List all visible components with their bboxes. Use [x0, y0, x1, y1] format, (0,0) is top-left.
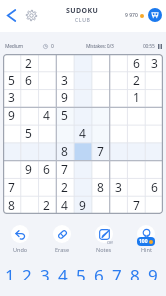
button[interactable]: 9 [55, 88, 73, 106]
button[interactable]: 3 [36, 264, 54, 280]
button[interactable]: 8 [126, 264, 144, 280]
button[interactable]: Undo [2, 225, 38, 253]
button[interactable] [109, 160, 127, 178]
button[interactable]: 9 [20, 160, 37, 178]
button[interactable]: 2 [37, 196, 55, 214]
button[interactable]: 6 [90, 264, 108, 280]
button[interactable]: 6 [145, 178, 163, 196]
button[interactable]: 6 [127, 54, 145, 71]
button[interactable] [145, 196, 163, 214]
button[interactable]: 9 970 [124, 10, 145, 21]
button[interactable]: 7 [108, 264, 126, 280]
button[interactable] [55, 54, 73, 71]
button[interactable] [109, 106, 127, 124]
button[interactable]: 6 [20, 71, 37, 88]
button[interactable] [3, 160, 20, 178]
button[interactable]: 8 [55, 142, 73, 160]
button[interactable] [73, 54, 91, 71]
button[interactable] [109, 88, 127, 106]
button[interactable]: 3 [55, 71, 73, 88]
button[interactable]: 6 [37, 160, 55, 178]
button[interactable]: 9 [144, 264, 162, 280]
button[interactable]: 2 [20, 54, 37, 71]
button[interactable]: 5 [55, 106, 73, 124]
button[interactable]: 7 [127, 196, 145, 214]
button[interactable] [37, 178, 55, 196]
button[interactable] [37, 71, 55, 88]
button[interactable] [91, 124, 109, 142]
button[interactable] [3, 124, 20, 142]
button[interactable]: 7 [55, 160, 73, 178]
button[interactable] [127, 160, 145, 178]
button[interactable]: 4 [55, 196, 73, 214]
button[interactable] [55, 124, 73, 142]
button[interactable] [145, 160, 163, 178]
button[interactable] [109, 124, 127, 142]
button[interactable] [20, 88, 37, 106]
button[interactable] [73, 71, 91, 88]
button[interactable]: 7 [91, 142, 109, 160]
button[interactable] [127, 124, 145, 142]
button[interactable]: 2 [55, 178, 73, 196]
button[interactable]: Erase [44, 225, 80, 253]
button[interactable]: 2 [127, 71, 145, 88]
button[interactable] [91, 88, 109, 106]
button[interactable]: 2 [18, 264, 36, 280]
button[interactable] [127, 106, 145, 124]
button[interactable]: 4 [54, 264, 72, 280]
button[interactable] [20, 142, 37, 160]
button[interactable] [145, 106, 163, 124]
button[interactable]: Back [0, 4, 22, 26]
button[interactable]: 100 [128, 225, 164, 253]
button[interactable] [73, 178, 91, 196]
button[interactable]: 9 [73, 196, 91, 214]
button[interactable] [20, 106, 37, 124]
button[interactable] [37, 88, 55, 106]
button[interactable] [109, 54, 127, 71]
button[interactable]: Shop [148, 8, 162, 22]
button[interactable] [37, 142, 55, 160]
button[interactable] [20, 178, 37, 196]
button[interactable] [145, 142, 163, 160]
button[interactable] [37, 54, 55, 71]
button[interactable]: 5 [3, 71, 20, 88]
button[interactable] [91, 160, 109, 178]
button[interactable] [91, 106, 109, 124]
button[interactable] [109, 71, 127, 88]
button[interactable] [145, 88, 163, 106]
button[interactable]: 4 [73, 124, 91, 142]
button[interactable]: 7 [3, 178, 20, 196]
button[interactable]: 8 [3, 196, 20, 214]
button[interactable] [3, 54, 20, 71]
button[interactable]: 1 [1, 264, 18, 280]
button[interactable] [127, 178, 145, 196]
button[interactable]: 9 [3, 106, 20, 124]
button[interactable] [91, 54, 109, 71]
button[interactable] [73, 142, 91, 160]
button[interactable] [91, 196, 109, 214]
staticText: 5 [61, 107, 68, 123]
button[interactable]: 1 [127, 88, 145, 106]
button[interactable]: 4 [37, 106, 55, 124]
button[interactable] [145, 124, 163, 142]
button[interactable]: 5 [20, 124, 37, 142]
button[interactable]: Pause [158, 43, 162, 50]
button[interactable]: Off [86, 225, 122, 253]
button[interactable] [3, 142, 20, 160]
button[interactable]: Settings [21, 5, 41, 25]
button[interactable] [91, 71, 109, 88]
button[interactable] [73, 88, 91, 106]
button[interactable]: 5 [72, 264, 90, 280]
button[interactable] [20, 196, 37, 214]
button[interactable] [127, 142, 145, 160]
button[interactable] [109, 142, 127, 160]
button[interactable] [37, 124, 55, 142]
button[interactable]: 3 [145, 54, 163, 71]
button[interactable]: 3 [109, 178, 127, 196]
button[interactable] [109, 196, 127, 214]
button[interactable] [145, 71, 163, 88]
button[interactable] [73, 160, 91, 178]
button[interactable]: 3 [3, 88, 20, 106]
button[interactable] [73, 106, 91, 124]
button[interactable]: 8 [91, 178, 109, 196]
